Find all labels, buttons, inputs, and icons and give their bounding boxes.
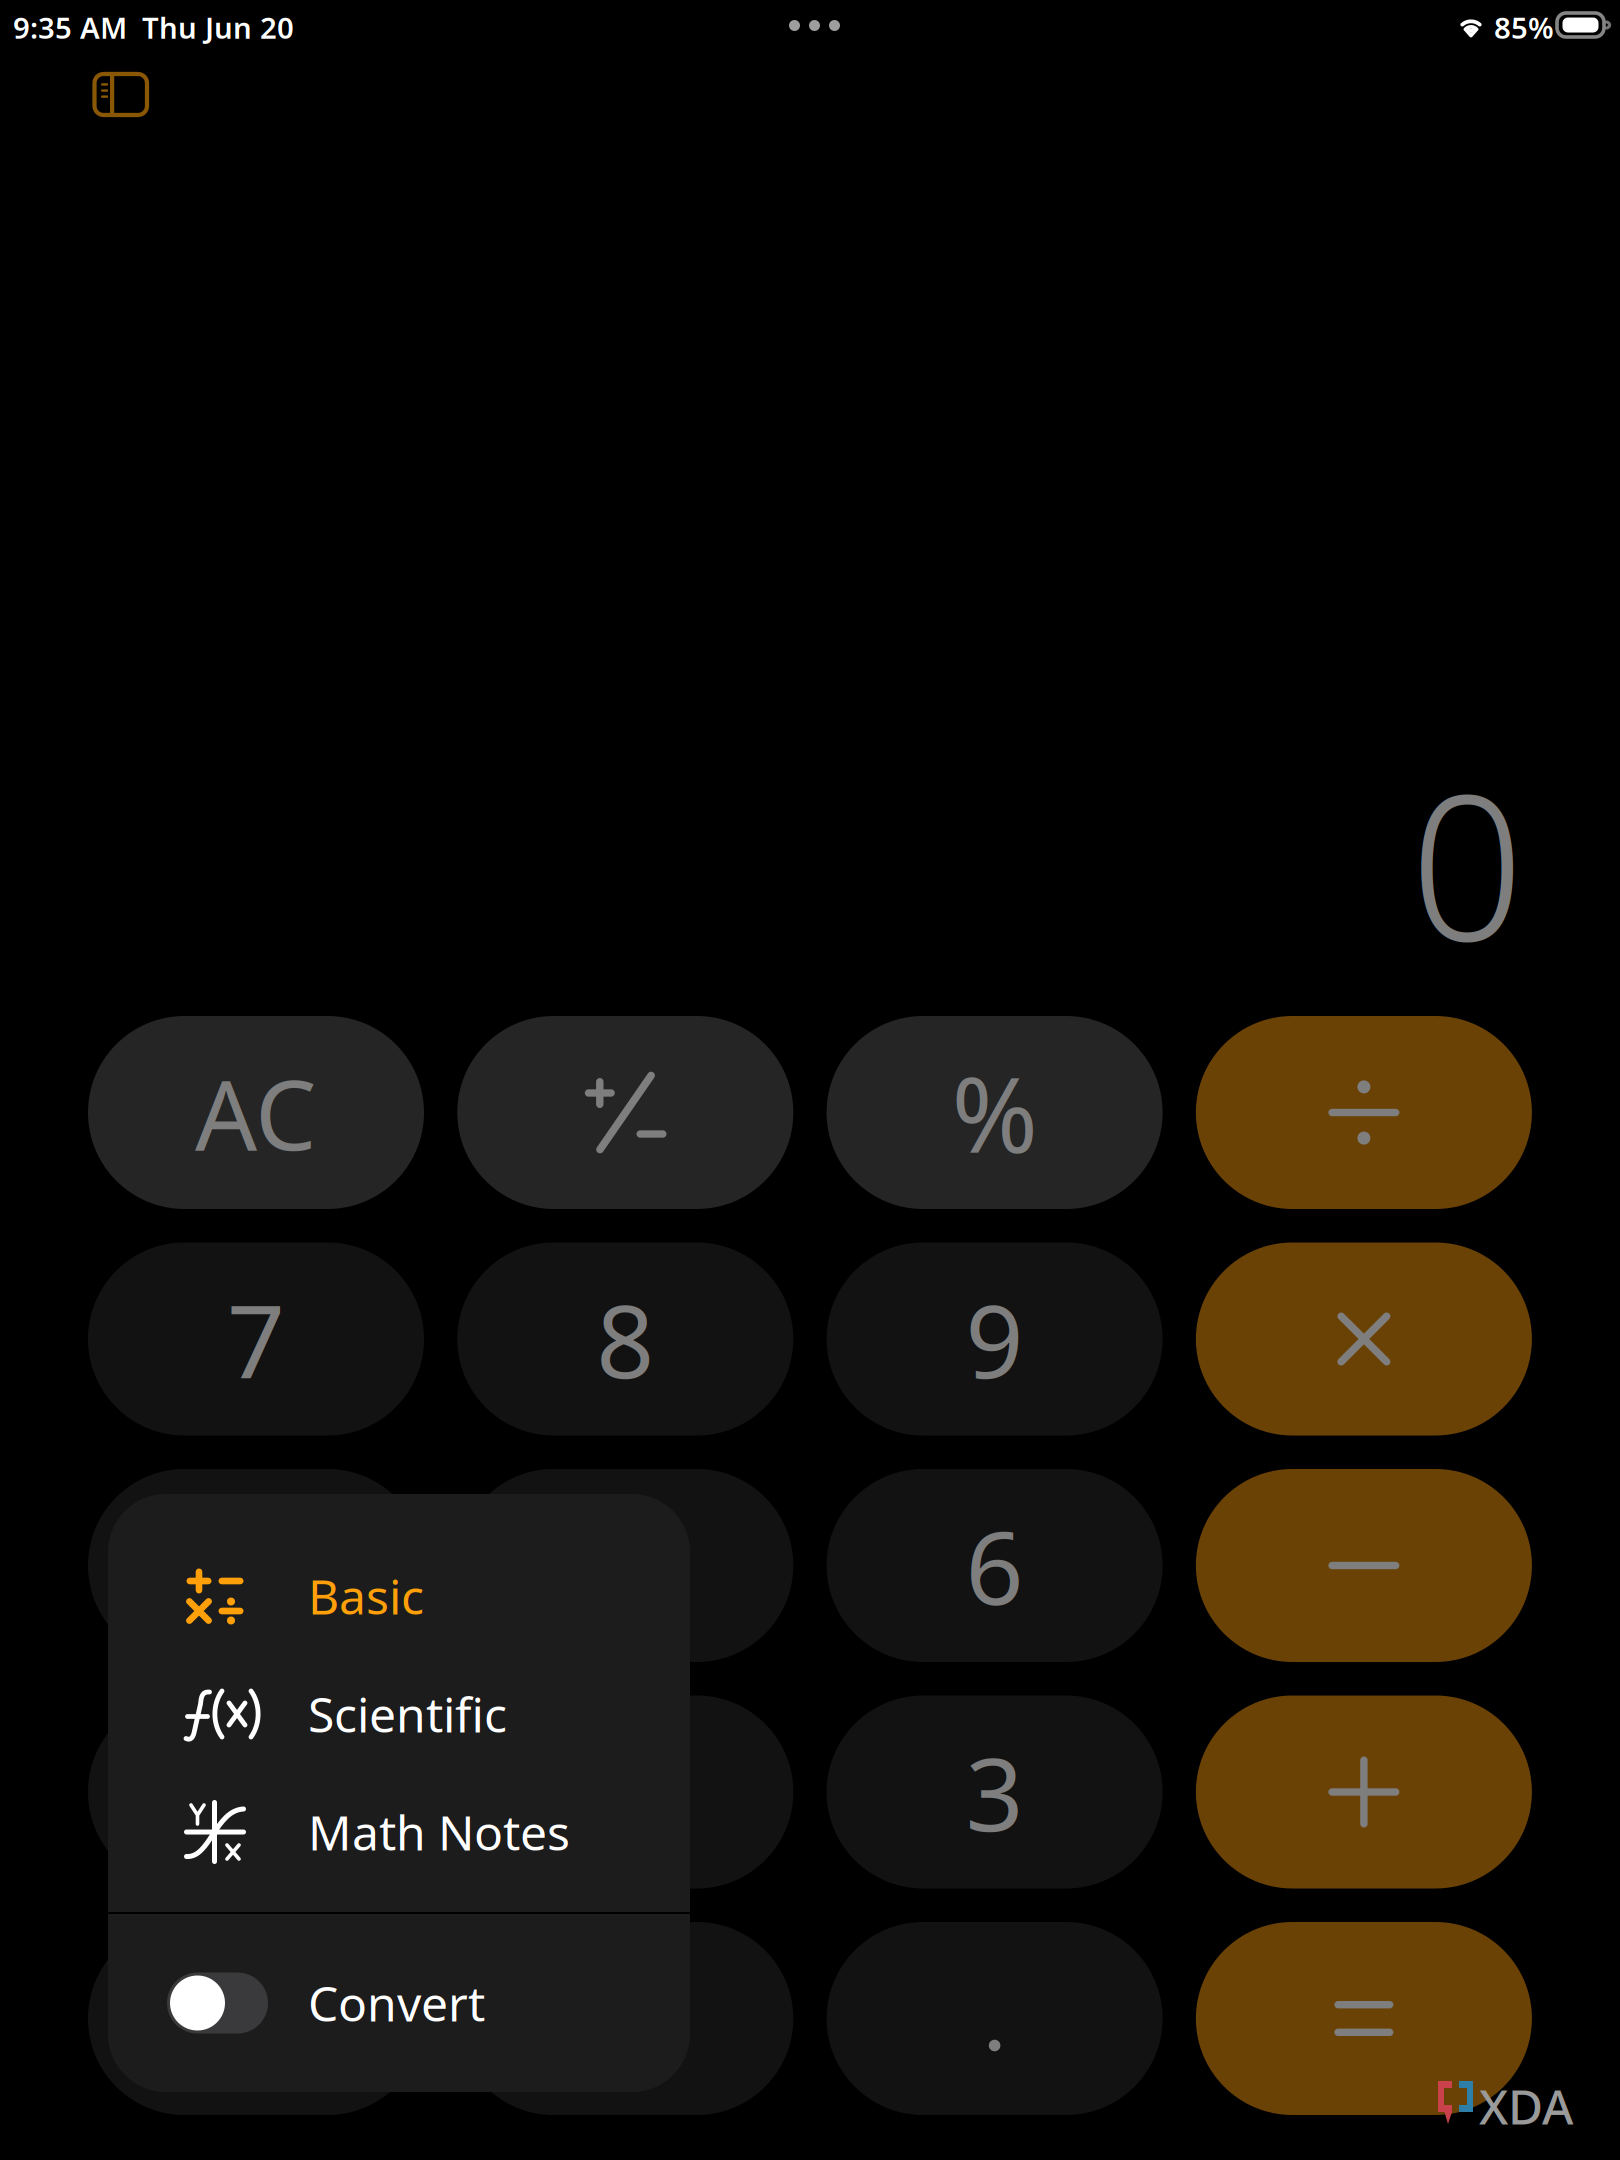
staticText: 0 bbox=[1410, 730, 1524, 996]
button[interactable]: 6 bbox=[827, 1469, 1163, 1662]
button[interactable] bbox=[88, 1922, 424, 2115]
staticText: 7 bbox=[227, 1272, 285, 1406]
staticText: 1 bbox=[227, 1725, 285, 1859]
button[interactable]: 2 bbox=[457, 1695, 793, 1888]
staticText: 9:35 AM bbox=[13, 8, 127, 47]
staticText: XDA bbox=[1479, 2074, 1573, 2138]
button[interactable]: 0 bbox=[457, 1922, 793, 2115]
staticText: 4 bbox=[227, 1498, 285, 1633]
staticText: 85% bbox=[1494, 8, 1554, 47]
button[interactable]: Math Notes bbox=[108, 1773, 690, 1891]
button[interactable] bbox=[1196, 1922, 1532, 2115]
staticText: 3 bbox=[966, 1725, 1024, 1859]
button[interactable] bbox=[1196, 1469, 1532, 1662]
staticText: Thu Jun 20 bbox=[142, 8, 294, 47]
button[interactable]: % bbox=[827, 1016, 1163, 1209]
button[interactable]: 9 bbox=[827, 1242, 1163, 1435]
button[interactable]: 5 bbox=[457, 1469, 793, 1662]
staticText: Math Notes bbox=[308, 1800, 570, 1864]
button[interactable] bbox=[1196, 1016, 1532, 1209]
staticText: 8 bbox=[596, 1272, 654, 1406]
button[interactable]: 1 bbox=[88, 1695, 424, 1888]
button[interactable]: Convert bbox=[108, 1944, 690, 2062]
button[interactable] bbox=[1196, 1242, 1532, 1435]
button[interactable]: 3 bbox=[827, 1695, 1163, 1888]
button[interactable]: 7 bbox=[88, 1242, 424, 1435]
button[interactable] bbox=[827, 1922, 1163, 2115]
button[interactable]: 4 bbox=[88, 1469, 424, 1662]
staticText: Scientific bbox=[308, 1682, 507, 1746]
button[interactable]: 8 bbox=[457, 1242, 793, 1435]
button[interactable] bbox=[457, 1016, 793, 1209]
staticText: AC bbox=[195, 1048, 317, 1177]
button[interactable]: Basic bbox=[108, 1537, 690, 1655]
button[interactable] bbox=[1196, 1695, 1532, 1888]
staticText: % bbox=[952, 1043, 1038, 1181]
staticText: 9 bbox=[966, 1272, 1024, 1406]
button[interactable]: Scientific bbox=[108, 1655, 690, 1773]
button[interactable]: AC bbox=[88, 1016, 424, 1209]
staticText: 6 bbox=[966, 1498, 1024, 1633]
staticText: Basic bbox=[308, 1564, 424, 1628]
staticText: Convert bbox=[308, 1971, 485, 2035]
button[interactable]: Show Sidebar bbox=[94, 74, 166, 134]
